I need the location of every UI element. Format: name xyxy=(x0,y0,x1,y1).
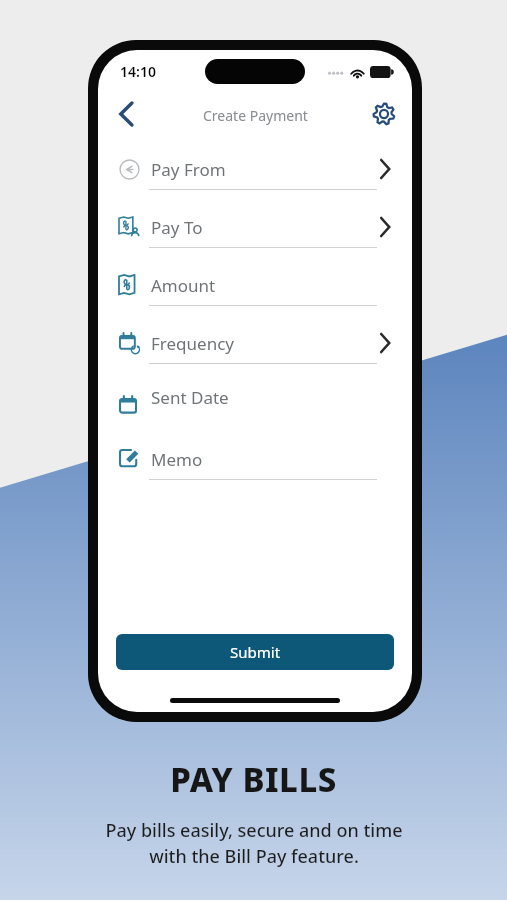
staticText: Pay To xyxy=(151,216,203,239)
staticText: Submit xyxy=(230,642,281,662)
button[interactable]: Settings xyxy=(364,94,404,134)
button[interactable]: Amount xyxy=(98,256,412,314)
staticText: Create Payment xyxy=(203,106,308,125)
button[interactable]: Pay To xyxy=(98,198,412,256)
button[interactable]: Submit xyxy=(116,634,394,670)
staticText: Sent Date xyxy=(151,386,229,409)
staticText: Memo xyxy=(151,448,203,471)
staticText: 14:10 xyxy=(120,62,156,81)
button[interactable]: Back xyxy=(106,94,146,134)
staticText: Frequency xyxy=(151,332,234,355)
button[interactable]: Memo xyxy=(98,430,412,488)
staticText: Amount xyxy=(151,274,216,297)
button[interactable]: Pay From xyxy=(98,140,412,198)
staticText: Pay bills easily, secure and on time wit… xyxy=(105,818,403,869)
staticText: Pay From xyxy=(151,158,226,181)
button[interactable]: Frequency xyxy=(98,314,412,372)
button[interactable]: Sent Date xyxy=(98,372,412,430)
staticText: PAY BILLS xyxy=(170,757,337,802)
